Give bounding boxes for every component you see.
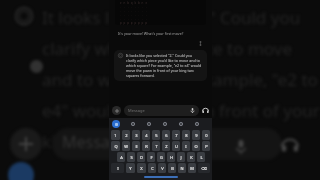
button[interactable]: F — [147, 152, 155, 162]
button[interactable]: 7 — [172, 130, 180, 140]
button[interactable]: G — [157, 152, 165, 162]
staticText: G — [160, 155, 163, 160]
button[interactable]: 3 — [132, 130, 140, 140]
staticText: W — [124, 144, 128, 149]
button[interactable]: It looks like you selected "2." Could yo… — [114, 50, 207, 81]
staticText: E — [135, 144, 138, 149]
button[interactable]: Q — [111, 141, 120, 151]
button[interactable]: B — [168, 163, 176, 173]
button[interactable]: U — [172, 141, 180, 151]
button[interactable]: ⌫ — [198, 163, 210, 173]
button[interactable]: Y — [126, 163, 135, 173]
staticText: Y — [129, 166, 132, 171]
staticText: xample, "e2 to — [204, 68, 318, 91]
staticText: J — [180, 155, 182, 160]
staticText: H — [170, 155, 173, 160]
staticText: Message — [128, 108, 145, 113]
button[interactable]: Message — [124, 105, 199, 116]
staticText: 1 — [114, 133, 117, 138]
button[interactable]: H — [167, 152, 175, 162]
button[interactable]: GIF — [129, 120, 137, 128]
button[interactable]: Share — [198, 41, 203, 46]
staticText: ke to move — [204, 37, 292, 60]
staticText: ⇧ — [116, 166, 120, 171]
button[interactable]: Voice input — [190, 108, 195, 113]
button[interactable]: J — [177, 152, 185, 162]
staticText: V — [161, 166, 164, 171]
staticText: 6 — [165, 133, 168, 138]
staticText: and to whi — [42, 68, 127, 91]
staticText: It looks like — [42, 6, 133, 29]
staticText: p p p p p p p p — [120, 21, 148, 25]
button[interactable]: Settings — [177, 120, 185, 128]
button[interactable]: Z — [162, 141, 170, 151]
button[interactable]: O — [192, 141, 200, 151]
button[interactable]: 5 — [152, 130, 160, 140]
button[interactable]: V — [158, 163, 166, 173]
staticText: P — [205, 144, 208, 149]
button[interactable]: A — [117, 152, 125, 162]
staticText: F — [150, 155, 153, 160]
staticText: 5 — [155, 133, 158, 138]
staticText: clarify whi — [42, 37, 123, 60]
staticText: Q — [114, 144, 118, 149]
staticText: 7 — [175, 133, 178, 138]
button[interactable]: N — [178, 163, 186, 173]
button[interactable]: R — [142, 141, 150, 151]
button[interactable]: I — [182, 141, 190, 151]
button[interactable]: Voice mode — [202, 107, 209, 114]
button[interactable]: X — [137, 163, 146, 173]
staticText: R — [145, 144, 148, 149]
staticText: I — [185, 144, 187, 149]
button[interactable]: 0 — [202, 130, 210, 140]
button[interactable]: Assistant — [112, 120, 120, 128]
button[interactable]: C — [148, 163, 156, 173]
button[interactable]: E — [132, 141, 140, 151]
button[interactable]: T — [152, 141, 160, 151]
staticText: n front of your — [204, 99, 320, 122]
button[interactable]: Voice — [193, 120, 201, 128]
staticText: N — [180, 166, 184, 171]
button[interactable]: Attach — [112, 106, 121, 115]
staticText: 4 — [145, 133, 148, 138]
staticText: L — [200, 155, 203, 160]
staticText: 8 — [185, 133, 188, 138]
staticText: r n b q k b n r — [120, 1, 148, 5]
staticText: It's your move! What's your first move? — [118, 31, 184, 36]
staticText: 9 — [195, 133, 198, 138]
staticText: A — [120, 155, 123, 160]
button[interactable]: Sticker — [145, 120, 153, 128]
staticText: X — [140, 166, 143, 171]
staticText: ." Could you — [204, 6, 301, 29]
button[interactable]: M — [188, 163, 196, 173]
button[interactable]: P — [202, 141, 210, 151]
staticText: 3 — [135, 133, 138, 138]
button[interactable]: Clipboard — [161, 120, 169, 128]
staticText: king two s — [42, 130, 124, 153]
button[interactable]: L — [197, 152, 205, 162]
staticText: T — [155, 144, 158, 149]
staticText: K — [190, 155, 193, 160]
button[interactable]: ⇧ — [111, 163, 124, 173]
staticText: It looks like you selected "2." Could yo… — [126, 53, 203, 78]
button[interactable]: D — [137, 152, 145, 162]
button[interactable]: W — [122, 141, 130, 151]
button[interactable]: 9 — [192, 130, 200, 140]
button[interactable]: 1 — [111, 130, 120, 140]
staticText: U — [175, 144, 178, 149]
button[interactable]: 4 — [142, 130, 150, 140]
button[interactable]: 6 — [162, 130, 170, 140]
button[interactable]: S — [127, 152, 135, 162]
staticText: 0 — [205, 133, 208, 138]
staticText: Z — [165, 144, 168, 149]
staticText: O — [194, 144, 198, 149]
button[interactable]: K — [187, 152, 195, 162]
staticText: M — [190, 166, 194, 171]
staticText: S — [130, 155, 133, 160]
button[interactable]: 2 — [122, 130, 130, 140]
button[interactable]: 8 — [182, 130, 190, 140]
